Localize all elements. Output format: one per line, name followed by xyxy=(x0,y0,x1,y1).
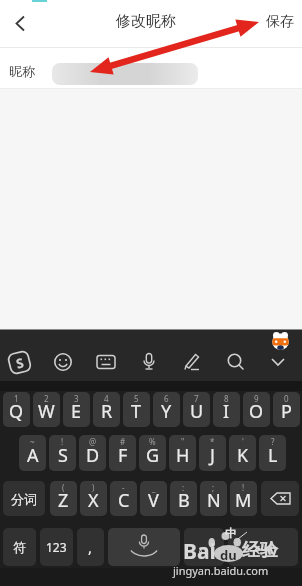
staticText: C xyxy=(118,488,130,513)
staticText: 0 xyxy=(284,393,289,404)
staticText: S xyxy=(58,443,68,468)
staticText: 3 xyxy=(74,393,79,404)
button[interactable]: 4 xyxy=(93,392,120,427)
button[interactable] xyxy=(267,351,289,373)
button[interactable]: # xyxy=(109,435,136,471)
button[interactable] xyxy=(261,481,299,516)
button[interactable]: 7 xyxy=(183,392,210,427)
button[interactable]: * xyxy=(199,435,226,471)
button[interactable]: " xyxy=(169,435,196,471)
button[interactable]: 分词 xyxy=(3,481,45,516)
staticText: 5 xyxy=(134,393,139,404)
button[interactable]: 3 xyxy=(63,392,90,427)
button[interactable]: 符 xyxy=(3,528,36,566)
button[interactable]: 123 xyxy=(40,528,73,566)
button[interactable] xyxy=(52,351,74,373)
button[interactable]: ! xyxy=(230,481,257,516)
button[interactable]: ! xyxy=(49,435,76,471)
staticText: 2 xyxy=(44,393,49,404)
staticText: 符 xyxy=(13,539,26,555)
button[interactable]: ; xyxy=(200,481,227,516)
staticText: 123 xyxy=(46,539,67,555)
staticText: A xyxy=(27,443,39,468)
staticText: 。 xyxy=(198,539,211,555)
button[interactable] xyxy=(95,351,117,373)
staticText: U xyxy=(190,399,204,424)
staticText: 分词 xyxy=(11,491,37,507)
staticText: jingyan.baidu.com xyxy=(173,563,269,578)
staticText: 昵称 xyxy=(9,63,35,79)
staticText: ; xyxy=(212,482,215,493)
staticText: T xyxy=(131,399,142,424)
button[interactable] xyxy=(181,351,203,373)
button[interactable]: _ xyxy=(140,481,167,516)
button[interactable]: 9 xyxy=(243,392,270,427)
staticText: 8 xyxy=(224,393,229,404)
button[interactable]: 。 xyxy=(184,528,224,566)
button[interactable]: 昵称 xyxy=(0,48,302,88)
button[interactable]: ) xyxy=(80,481,107,516)
button[interactable] xyxy=(138,351,160,373)
staticText: N xyxy=(207,488,221,513)
staticText: O xyxy=(249,399,264,424)
staticText: W xyxy=(38,399,55,424)
staticText: J xyxy=(210,443,215,468)
button[interactable]: 6 xyxy=(153,392,180,427)
staticText: , xyxy=(88,537,93,557)
button[interactable]: : xyxy=(170,481,197,516)
staticText: X xyxy=(88,488,99,513)
staticText: S xyxy=(14,353,26,373)
staticText: M xyxy=(235,488,252,513)
button[interactable]: ~ xyxy=(19,435,46,471)
button[interactable]: 2 xyxy=(33,392,60,427)
staticText: : xyxy=(182,482,185,493)
button[interactable]: , xyxy=(77,528,104,566)
button[interactable] xyxy=(228,528,298,566)
staticText: # xyxy=(120,436,126,447)
staticText: E xyxy=(71,399,82,424)
button[interactable]: ? xyxy=(259,435,286,471)
staticText: ( xyxy=(62,482,65,493)
staticText: K xyxy=(237,443,249,468)
staticText: ! xyxy=(242,482,245,493)
button[interactable]: 8 xyxy=(213,392,240,427)
staticText: du xyxy=(220,546,237,564)
staticText: ' xyxy=(242,436,244,447)
button[interactable]: @ xyxy=(79,435,106,471)
staticText: @ xyxy=(89,436,97,447)
staticText: 中 xyxy=(225,526,236,540)
staticText: _ xyxy=(152,482,156,493)
staticText: L xyxy=(268,443,278,468)
button[interactable]: 保存 xyxy=(258,0,302,47)
button[interactable]: - xyxy=(110,481,137,516)
staticText: ~ xyxy=(30,436,35,447)
button[interactable] xyxy=(108,528,180,566)
button[interactable]: % xyxy=(139,435,166,471)
staticText: ? xyxy=(271,436,275,447)
staticText: 7 xyxy=(194,393,199,404)
staticText: 修改昵称 xyxy=(116,12,176,31)
staticText: Q xyxy=(9,399,24,424)
staticText: 1 xyxy=(14,393,19,404)
staticText: P xyxy=(281,399,292,424)
staticText: 9 xyxy=(254,393,259,404)
staticText: G xyxy=(146,443,160,468)
staticText: 4 xyxy=(104,393,109,404)
button[interactable]: ( xyxy=(50,481,77,516)
staticText: ) xyxy=(92,482,95,493)
staticText: " xyxy=(181,436,185,447)
button[interactable]: 0 xyxy=(273,392,300,427)
button[interactable] xyxy=(0,0,40,47)
staticText: ! xyxy=(61,436,64,447)
button[interactable] xyxy=(225,351,247,373)
button[interactable]: 1 xyxy=(3,392,30,427)
staticText: F xyxy=(118,443,128,468)
staticText: 6 xyxy=(164,393,169,404)
staticText: Y xyxy=(161,399,172,424)
staticText: Z xyxy=(58,488,69,513)
staticText: R xyxy=(101,399,113,424)
staticText: 经验 xyxy=(242,539,278,562)
button[interactable]: ' xyxy=(229,435,256,471)
button[interactable]: 5 xyxy=(123,392,150,427)
button[interactable]: S xyxy=(8,351,30,373)
